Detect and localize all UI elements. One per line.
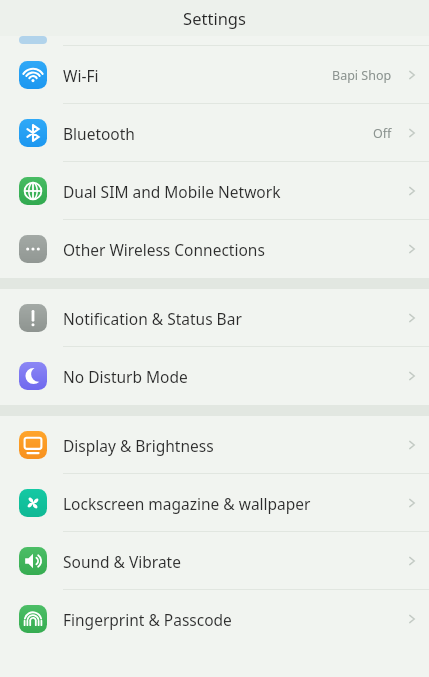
staticText: Settings bbox=[183, 7, 246, 29]
button[interactable]: Dual SIM and Mobile Network bbox=[0, 162, 429, 220]
button[interactable]: Bluetooth bbox=[0, 104, 429, 162]
staticText: Lockscreen magazine & wallpaper bbox=[63, 493, 401, 514]
button[interactable]: Sound & Vibrate bbox=[0, 532, 429, 590]
staticText: Bluetooth bbox=[63, 123, 373, 144]
staticText: No Disturb Mode bbox=[63, 366, 401, 387]
button[interactable]: Wi-Fi bbox=[0, 46, 429, 104]
staticText: Sound & Vibrate bbox=[63, 551, 401, 572]
staticText: Display & Brightness bbox=[63, 435, 401, 456]
staticText: Bapi Shop bbox=[332, 67, 392, 84]
staticText: Dual SIM and Mobile Network bbox=[63, 181, 401, 202]
button[interactable]: Notification & Status Bar bbox=[0, 289, 429, 347]
button[interactable]: Lockscreen magazine & wallpaper bbox=[0, 474, 429, 532]
button[interactable]: Fingerprint & Passcode bbox=[0, 590, 429, 648]
staticText: Fingerprint & Passcode bbox=[63, 609, 401, 630]
button[interactable]: Other Wireless Connections bbox=[0, 220, 429, 278]
staticText: Wi-Fi bbox=[63, 65, 332, 86]
staticText: Notification & Status Bar bbox=[63, 308, 401, 329]
staticText: Other Wireless Connections bbox=[63, 239, 401, 260]
button[interactable]: No Disturb Mode bbox=[0, 347, 429, 405]
staticText: Off bbox=[373, 125, 392, 142]
button[interactable]: Display & Brightness bbox=[0, 416, 429, 474]
